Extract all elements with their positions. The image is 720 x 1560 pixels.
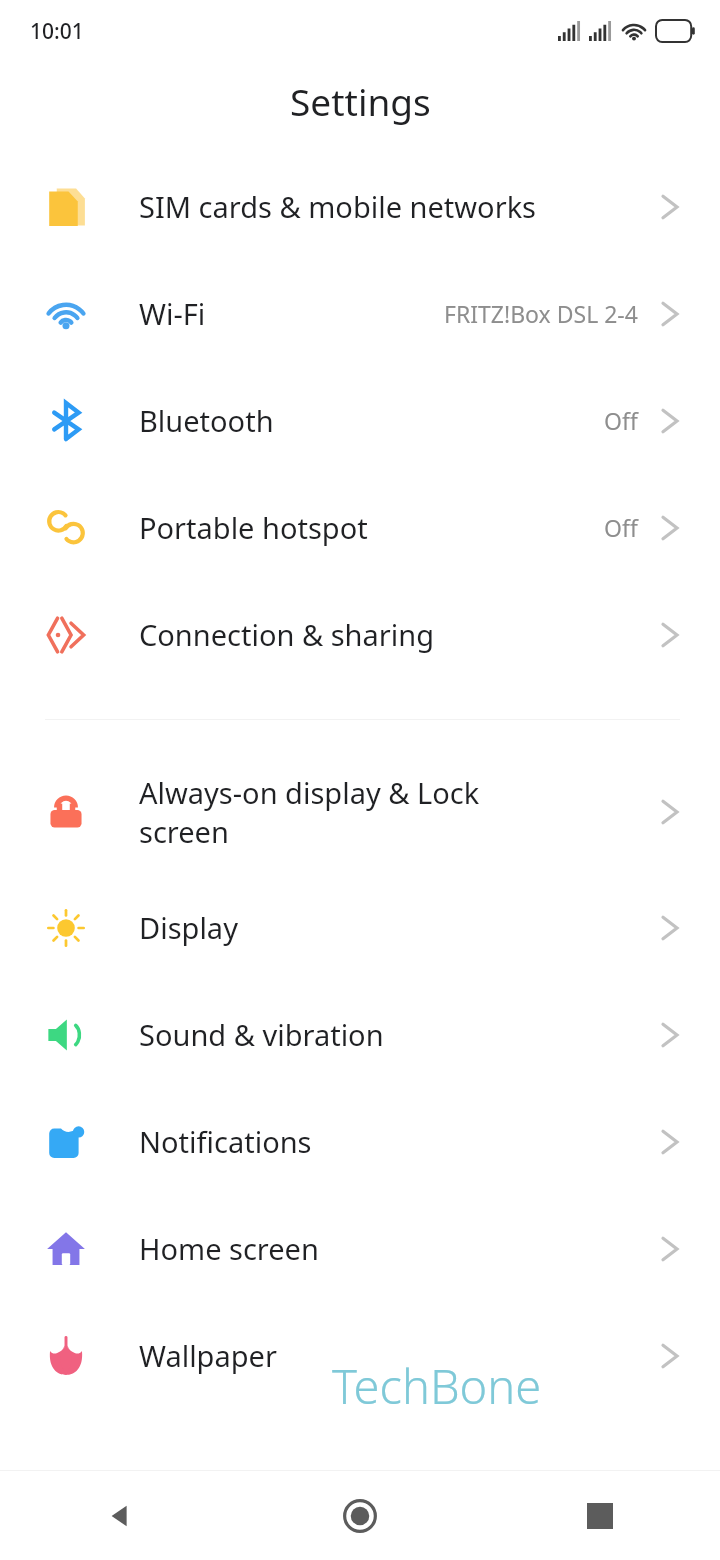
- button[interactable]: Wallpaper: [0, 1302, 720, 1409]
- button[interactable]: Wi-Fi: [0, 260, 720, 367]
- button[interactable]: Bluetooth: [0, 367, 720, 474]
- staticText: TechBone: [332, 1354, 542, 1418]
- staticText: Notifications: [139, 1122, 312, 1161]
- staticText: Connection & sharing: [139, 615, 435, 654]
- staticText: Portable hotspot: [139, 508, 368, 547]
- button[interactable]: SIM cards & mobile networks: [0, 153, 720, 260]
- staticText: Display: [139, 908, 238, 947]
- staticText: SIM cards & mobile networks: [139, 187, 537, 226]
- staticText: Settings: [290, 76, 431, 126]
- button[interactable]: Home: [240, 1471, 480, 1560]
- button[interactable]: Back: [0, 1471, 240, 1560]
- staticText: Bluetooth: [139, 401, 274, 440]
- button[interactable]: Always-on display & Lock screen: [0, 749, 720, 874]
- button[interactable]: Portable hotspot: [0, 474, 720, 581]
- button[interactable]: Home screen: [0, 1195, 720, 1302]
- staticText: Always-on display & Lock screen: [139, 773, 520, 851]
- button[interactable]: Notifications: [0, 1088, 720, 1195]
- button[interactable]: Recent apps: [480, 1471, 720, 1560]
- staticText: Wi-Fi: [139, 294, 206, 333]
- staticText: FRITZ!Box DSL 2-4: [444, 298, 638, 329]
- staticText: Off: [604, 405, 638, 436]
- button[interactable]: Display: [0, 874, 720, 981]
- staticText: Wallpaper: [139, 1336, 277, 1375]
- button[interactable]: Connection & sharing: [0, 581, 720, 688]
- button[interactable]: Sound & vibration: [0, 981, 720, 1088]
- staticText: Sound & vibration: [139, 1015, 384, 1054]
- staticText: Off: [604, 512, 638, 543]
- staticText: 10:01: [30, 17, 84, 46]
- staticText: Home screen: [139, 1229, 319, 1268]
